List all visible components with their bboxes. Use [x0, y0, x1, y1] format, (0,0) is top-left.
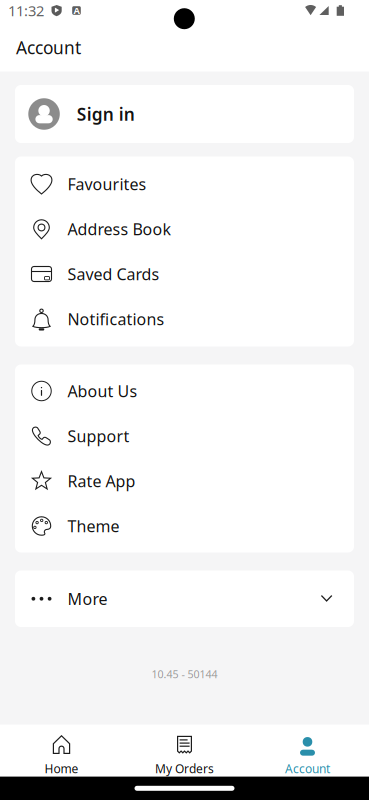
staticText: Theme — [67, 515, 119, 537]
staticText: A — [73, 4, 79, 17]
button[interactable]: Saved Cards — [15, 251, 354, 296]
button[interactable]: Rate App — [15, 458, 354, 503]
staticText: Account — [16, 36, 81, 59]
staticText: Rate App — [67, 470, 135, 492]
staticText: My Orders — [155, 761, 214, 776]
button[interactable]: Support — [15, 413, 354, 458]
staticText: Sign in — [77, 102, 135, 125]
staticText: 10.45 - 50144 — [151, 667, 217, 681]
button[interactable]: More — [15, 570, 354, 627]
staticText: Saved Cards — [67, 263, 159, 285]
button[interactable]: Home — [0, 725, 123, 777]
staticText: Favourites — [67, 173, 146, 195]
button[interactable]: Theme — [15, 503, 354, 548]
button[interactable]: Account — [246, 725, 369, 777]
button[interactable]: About Us — [15, 368, 354, 413]
staticText: Address Book — [67, 218, 171, 240]
staticText: Home — [44, 761, 78, 776]
staticText: About Us — [67, 380, 137, 402]
staticText: More — [67, 588, 107, 609]
staticText: 11:32 — [8, 1, 44, 20]
staticText: Support — [67, 425, 129, 447]
staticText: Account — [285, 761, 330, 776]
button[interactable]: My Orders — [123, 725, 246, 777]
button[interactable]: Sign in — [15, 85, 354, 143]
staticText: Notifications — [67, 308, 164, 330]
button[interactable]: Notifications — [15, 296, 354, 341]
button[interactable]: Favourites — [15, 161, 354, 206]
button[interactable]: Address Book — [15, 206, 354, 251]
